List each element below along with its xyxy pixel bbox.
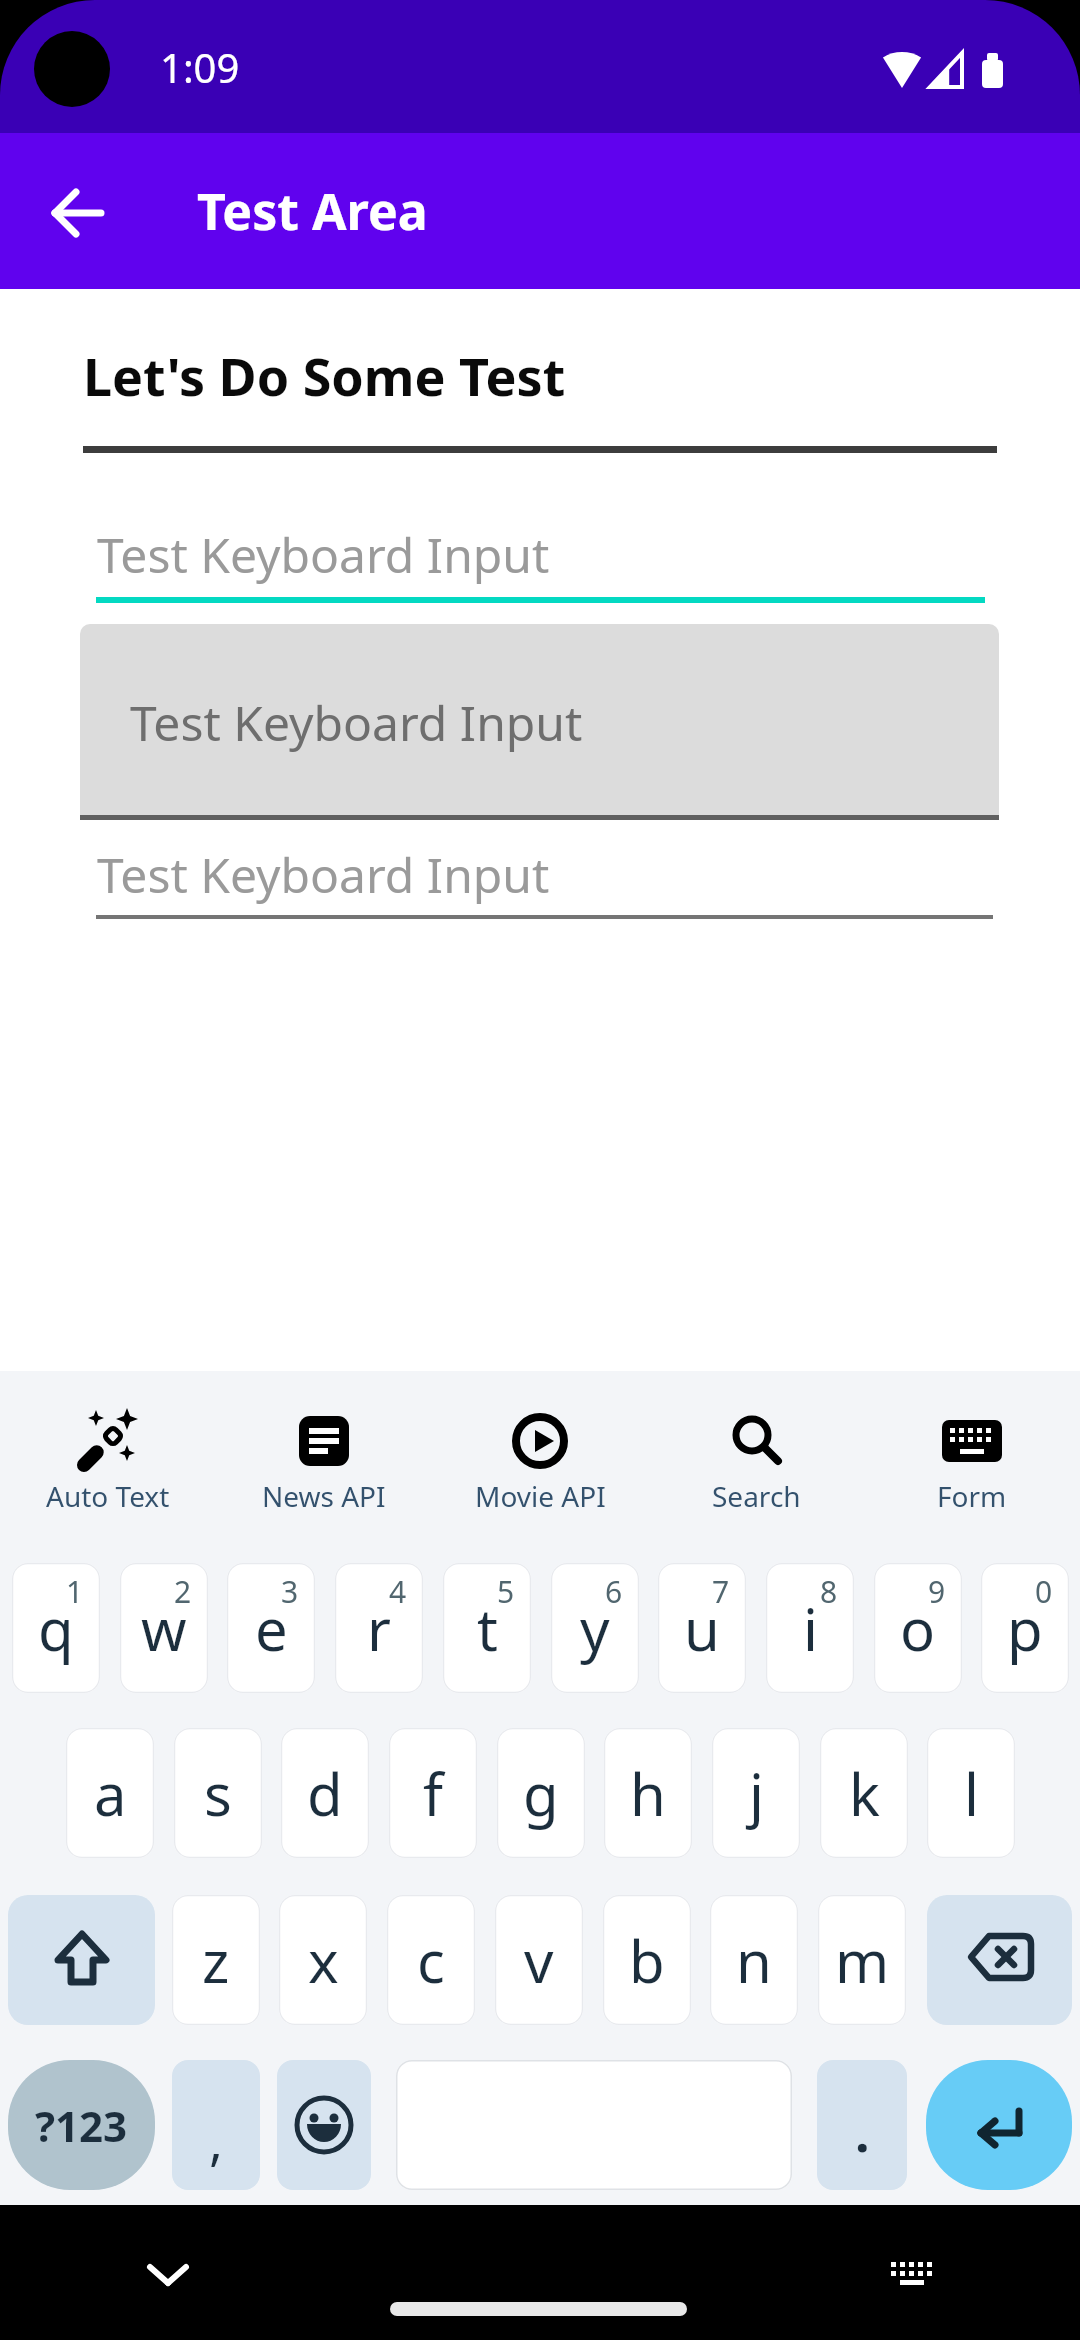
button[interactable] [130, 2235, 206, 2311]
button[interactable]: Test Keyboard Input [80, 624, 999, 820]
staticText: o [900, 1589, 936, 1668]
staticText: Form [937, 1477, 1007, 1515]
button[interactable]: Form [864, 1371, 1080, 1521]
staticText: 6 [605, 1571, 623, 1612]
button[interactable] [927, 1895, 1072, 2025]
button[interactable]: j [712, 1728, 800, 1858]
button[interactable]: t [443, 1563, 531, 1693]
button[interactable]: n [710, 1895, 798, 2025]
button[interactable]: r [335, 1563, 423, 1693]
button[interactable]: q [12, 1563, 100, 1693]
staticText: g [523, 1754, 559, 1833]
staticText: Test Area [197, 177, 428, 245]
button[interactable]: c [387, 1895, 475, 2025]
staticText: Movie API [475, 1477, 606, 1515]
button[interactable]: b [603, 1895, 691, 2025]
button[interactable]: u [658, 1563, 746, 1693]
button[interactable]: ?123 [8, 2060, 155, 2190]
button[interactable]: i [766, 1563, 854, 1693]
button[interactable]: v [495, 1895, 583, 2025]
staticText: Test Keyboard Input [97, 842, 550, 907]
button[interactable]: News API [216, 1371, 432, 1521]
button[interactable]: f [389, 1728, 477, 1858]
button[interactable] [874, 2235, 950, 2311]
button[interactable]: a [66, 1728, 154, 1858]
staticText: w [141, 1589, 187, 1668]
staticText: 5 [497, 1571, 515, 1612]
staticText: 0 [1035, 1571, 1053, 1612]
staticText: v [524, 1921, 554, 2000]
staticText: b [629, 1921, 665, 2000]
button[interactable]: w [120, 1563, 208, 1693]
button[interactable]: k [820, 1728, 908, 1858]
staticText: j [749, 1754, 764, 1833]
staticText: 1 [66, 1571, 84, 1612]
staticText: z [202, 1921, 230, 2000]
staticText: q [38, 1589, 74, 1668]
button[interactable]: z [172, 1895, 260, 2025]
button[interactable]: y [551, 1563, 639, 1693]
staticText: 3 [281, 1571, 299, 1612]
staticText: Let's Do Some Test [83, 340, 566, 411]
staticText: Test Keyboard Input [97, 522, 550, 587]
button[interactable] [396, 2060, 792, 2190]
staticText: 1:09 [160, 40, 240, 94]
button[interactable]: m [818, 1895, 906, 2025]
staticText: c [417, 1921, 445, 2000]
button[interactable]: Auto Text [0, 1371, 216, 1521]
button[interactable] [30, 165, 126, 261]
staticText: News API [262, 1477, 386, 1515]
button[interactable]: Search [648, 1371, 864, 1521]
staticText: k [849, 1754, 880, 1833]
staticText: , [209, 2104, 223, 2175]
button[interactable]: o [874, 1563, 962, 1693]
staticText: f [423, 1754, 443, 1833]
staticText: e [255, 1589, 288, 1668]
button[interactable]: x [279, 1895, 367, 2025]
button[interactable]: . [817, 2060, 907, 2190]
button[interactable]: Test Keyboard Input [97, 834, 985, 914]
button[interactable]: Test Keyboard Input [97, 511, 985, 597]
staticText: t [477, 1589, 498, 1668]
staticText: Test Keyboard Input [130, 690, 583, 755]
button[interactable] [926, 2060, 1072, 2190]
staticText: x [308, 1921, 339, 2000]
staticText: 8 [820, 1571, 838, 1612]
button[interactable]: p [981, 1563, 1069, 1693]
staticText: y [580, 1589, 610, 1668]
button[interactable]: d [281, 1728, 369, 1858]
button[interactable] [277, 2060, 371, 2190]
button[interactable]: , [172, 2060, 260, 2190]
staticText: 9 [928, 1571, 946, 1612]
staticText: . [855, 2096, 870, 2167]
staticText: u [684, 1589, 720, 1668]
staticText: n [736, 1921, 772, 2000]
staticText: h [630, 1754, 666, 1833]
staticText: Auto Text [46, 1477, 170, 1515]
staticText: Search [712, 1477, 801, 1515]
staticText: a [94, 1754, 127, 1833]
staticText: d [307, 1754, 343, 1833]
staticText: p [1007, 1589, 1043, 1668]
button[interactable] [8, 1895, 155, 2025]
staticText: 4 [389, 1571, 407, 1612]
button[interactable]: g [497, 1728, 585, 1858]
button[interactable]: h [604, 1728, 692, 1858]
button[interactable]: e [227, 1563, 315, 1693]
staticText: 2 [174, 1571, 192, 1612]
staticText: s [204, 1754, 232, 1833]
staticText: r [367, 1589, 391, 1668]
button[interactable]: s [174, 1728, 262, 1858]
staticText: m [835, 1921, 890, 2000]
staticText: l [964, 1754, 979, 1833]
staticText: i [803, 1589, 818, 1668]
button[interactable]: Movie API [432, 1371, 648, 1521]
staticText: 7 [712, 1571, 730, 1612]
staticText: ?123 [35, 2097, 128, 2154]
button[interactable]: l [927, 1728, 1015, 1858]
